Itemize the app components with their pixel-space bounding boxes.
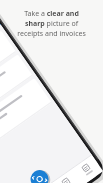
staticText: Take a clear and sharp picture of receip… bbox=[10, 9, 93, 39]
button[interactable]: Phone showing receipt scanning app bbox=[0, 0, 103, 183]
